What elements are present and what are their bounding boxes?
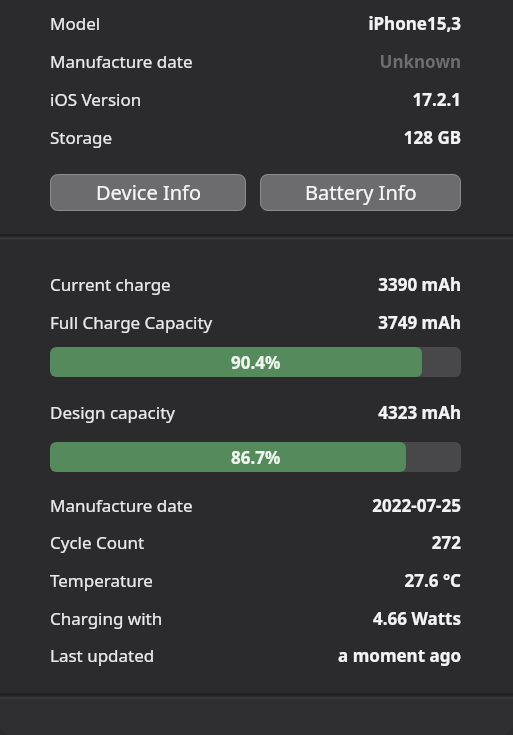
staticText: 17.2.1 (412, 88, 461, 111)
button[interactable]: Battery Info (260, 174, 461, 211)
staticText: Charging with (50, 607, 163, 630)
staticText: 3749 mAh (378, 311, 461, 334)
staticText: iPhone15,3 (368, 12, 461, 35)
staticText: Temperature (50, 569, 153, 592)
staticText: Device Info (96, 179, 201, 206)
staticText: Current charge (50, 273, 171, 296)
button[interactable]: Device Info (50, 174, 246, 211)
staticText: 272 (431, 531, 461, 554)
staticText: Manufacture date (50, 50, 193, 73)
staticText: 90.4% (231, 351, 281, 374)
staticText: 2022-07-25 (372, 494, 461, 517)
staticText: 27.6 °C (404, 569, 461, 592)
staticText: a moment ago (338, 644, 461, 667)
staticText: Full Charge Capacity (50, 311, 213, 334)
staticText: Manufacture date (50, 494, 193, 517)
staticText: Cycle Count (50, 531, 145, 554)
staticText: 128 GB (403, 126, 461, 149)
staticText: Model (50, 12, 101, 35)
staticText: Battery Info (305, 179, 417, 206)
staticText: 4323 mAh (378, 401, 461, 424)
staticText: iOS Version (50, 88, 142, 111)
staticText: 86.7% (231, 446, 281, 469)
staticText: 4.66 Watts (373, 607, 461, 630)
staticText: Last updated (50, 644, 155, 667)
staticText: Unknown (379, 50, 461, 73)
staticText: 3390 mAh (378, 273, 461, 296)
staticText: Storage (50, 126, 113, 149)
staticText: Design capacity (50, 401, 175, 424)
